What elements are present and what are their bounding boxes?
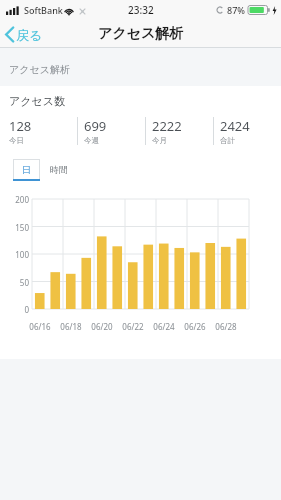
staticText: 699 xyxy=(84,117,107,135)
button[interactable]: 時間 xyxy=(44,159,74,181)
staticText: 23:32 xyxy=(128,3,154,17)
staticText: 戻る xyxy=(16,27,43,43)
staticText: 50 xyxy=(2,277,29,288)
staticText: 150 xyxy=(2,222,29,233)
staticText: 2222 xyxy=(152,117,182,135)
staticText: 128 xyxy=(9,117,32,135)
staticText: 0 xyxy=(2,304,29,315)
staticText: SoftBank xyxy=(24,4,63,16)
staticText: 06/28 xyxy=(211,321,241,332)
staticText: 87% xyxy=(227,4,245,16)
staticText: 今週 xyxy=(84,136,99,145)
button[interactable]: 戻る xyxy=(0,23,51,46)
staticText: 06/24 xyxy=(149,321,179,332)
staticText: アクセス数 xyxy=(9,94,66,108)
button[interactable]: 日 xyxy=(13,159,40,181)
staticText: アクセス解析 xyxy=(9,63,70,76)
staticText: 今月 xyxy=(152,136,167,145)
staticText: アクセス解析 xyxy=(98,25,184,43)
staticText: 06/18 xyxy=(56,321,86,332)
staticText: 合計 xyxy=(220,136,235,145)
staticText: 2424 xyxy=(220,117,250,135)
staticText: 100 xyxy=(2,249,29,260)
staticText: 日 xyxy=(22,164,31,175)
staticText: 200 xyxy=(2,194,29,205)
staticText: 時間 xyxy=(50,164,68,175)
staticText: 今日 xyxy=(9,136,24,145)
staticText: 06/16 xyxy=(25,321,55,332)
staticText: 06/26 xyxy=(180,321,210,332)
staticText: 06/20 xyxy=(87,321,117,332)
staticText: 06/22 xyxy=(118,321,148,332)
